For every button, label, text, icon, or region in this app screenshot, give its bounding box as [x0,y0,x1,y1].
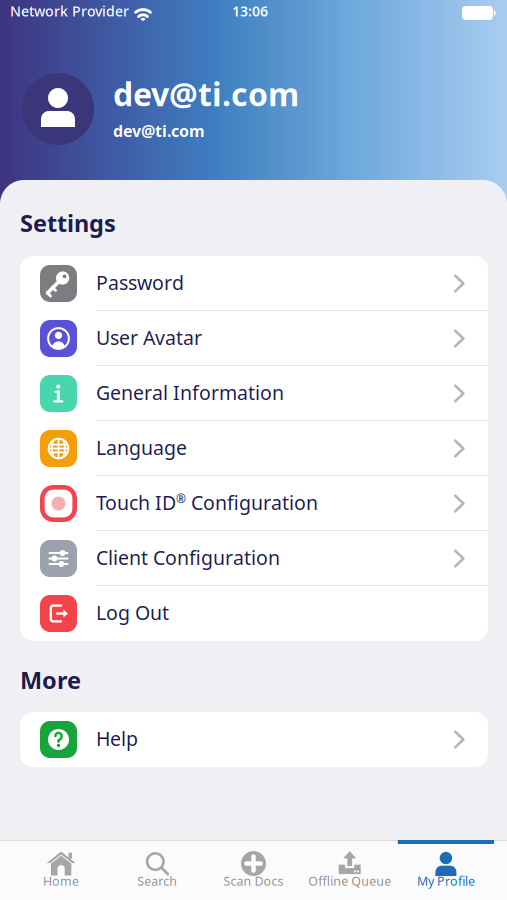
staticText: Network Provider [10,1,129,21]
staticText: Password [96,269,184,296]
staticText: Offline Queue [308,873,391,889]
staticText: dev@ti.com [113,120,205,142]
staticText: Settings [20,207,116,239]
staticText: Help [96,725,138,752]
staticText: User Avatar [96,324,202,351]
staticText: Home [43,873,79,889]
staticText: Configuration [186,489,318,516]
staticText: Client Configuration [96,544,280,571]
button[interactable]: Language [20,421,488,476]
button[interactable]: Touch ID [20,476,488,531]
staticText: Log Out [96,599,169,626]
staticText: dev@ti.com [113,72,299,116]
staticText: General Information [96,379,284,406]
button[interactable]: Scan Docs [205,846,302,898]
staticText: Scan Docs [223,873,283,889]
staticText: ® [176,490,186,507]
button[interactable]: Help [20,712,488,767]
button[interactable]: Search [109,846,205,898]
staticText: Search [137,873,177,889]
staticText: More [20,664,81,696]
button[interactable]: Log Out [20,586,488,641]
staticText: Touch ID [96,489,176,516]
button[interactable]: User Avatar [20,311,488,366]
button[interactable]: Password [20,256,488,311]
staticText: Language [96,434,187,461]
button[interactable]: General Information [20,366,488,421]
staticText: 13:06 [232,1,268,21]
staticText: My Profile [417,873,475,889]
button[interactable]: Home [13,846,109,898]
button[interactable]: My Profile [398,846,494,898]
button[interactable]: Client Configuration [20,531,488,586]
button[interactable]: Offline Queue [302,846,398,898]
